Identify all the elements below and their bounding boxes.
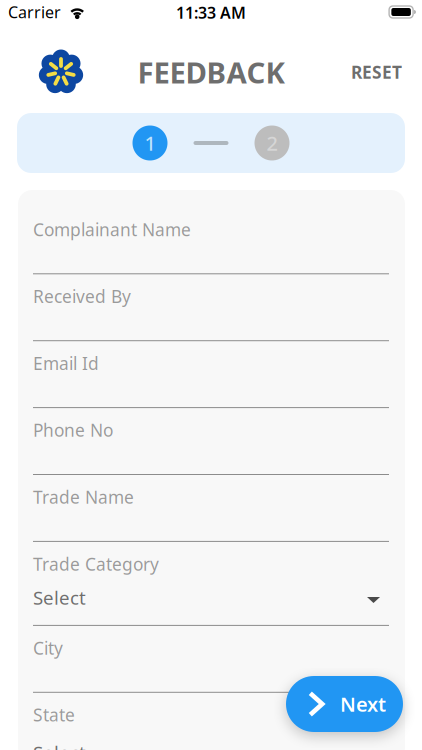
staticText: Select: [33, 585, 86, 610]
staticText: RESET: [351, 60, 402, 83]
staticText: Received By: [33, 285, 131, 308]
button[interactable]: Home: [38, 49, 84, 95]
staticText: State: [33, 703, 75, 726]
button[interactable]: Trade Name: [33, 475, 389, 542]
staticText: Next: [340, 691, 386, 717]
button[interactable]: State: [33, 693, 389, 750]
staticText: FEEDBACK: [137, 52, 284, 91]
staticText: 2: [266, 130, 277, 156]
staticText: Phone No: [33, 419, 113, 442]
staticText: Email Id: [33, 352, 99, 375]
button[interactable]: Complainant Name: [33, 207, 389, 274]
button[interactable]: Email Id: [33, 341, 389, 408]
button[interactable]: City: [33, 626, 389, 693]
button[interactable]: Trade Category: [33, 542, 389, 626]
staticText: Trade Category: [33, 552, 159, 575]
staticText: Carrier: [8, 1, 61, 23]
button[interactable]: 2: [254, 125, 289, 160]
staticText: Trade Name: [33, 485, 134, 508]
staticText: Complainant Name: [33, 218, 191, 241]
button[interactable]: RESET: [337, 50, 402, 93]
staticText: City: [33, 636, 63, 659]
button[interactable]: Received By: [33, 274, 389, 341]
button[interactable]: Next: [286, 676, 403, 732]
button[interactable]: 1: [132, 125, 167, 160]
staticText: Select: [33, 740, 86, 750]
staticText: 1: [144, 130, 155, 156]
staticText: 11:33 AM: [176, 2, 246, 23]
button[interactable]: Phone No: [33, 408, 389, 475]
